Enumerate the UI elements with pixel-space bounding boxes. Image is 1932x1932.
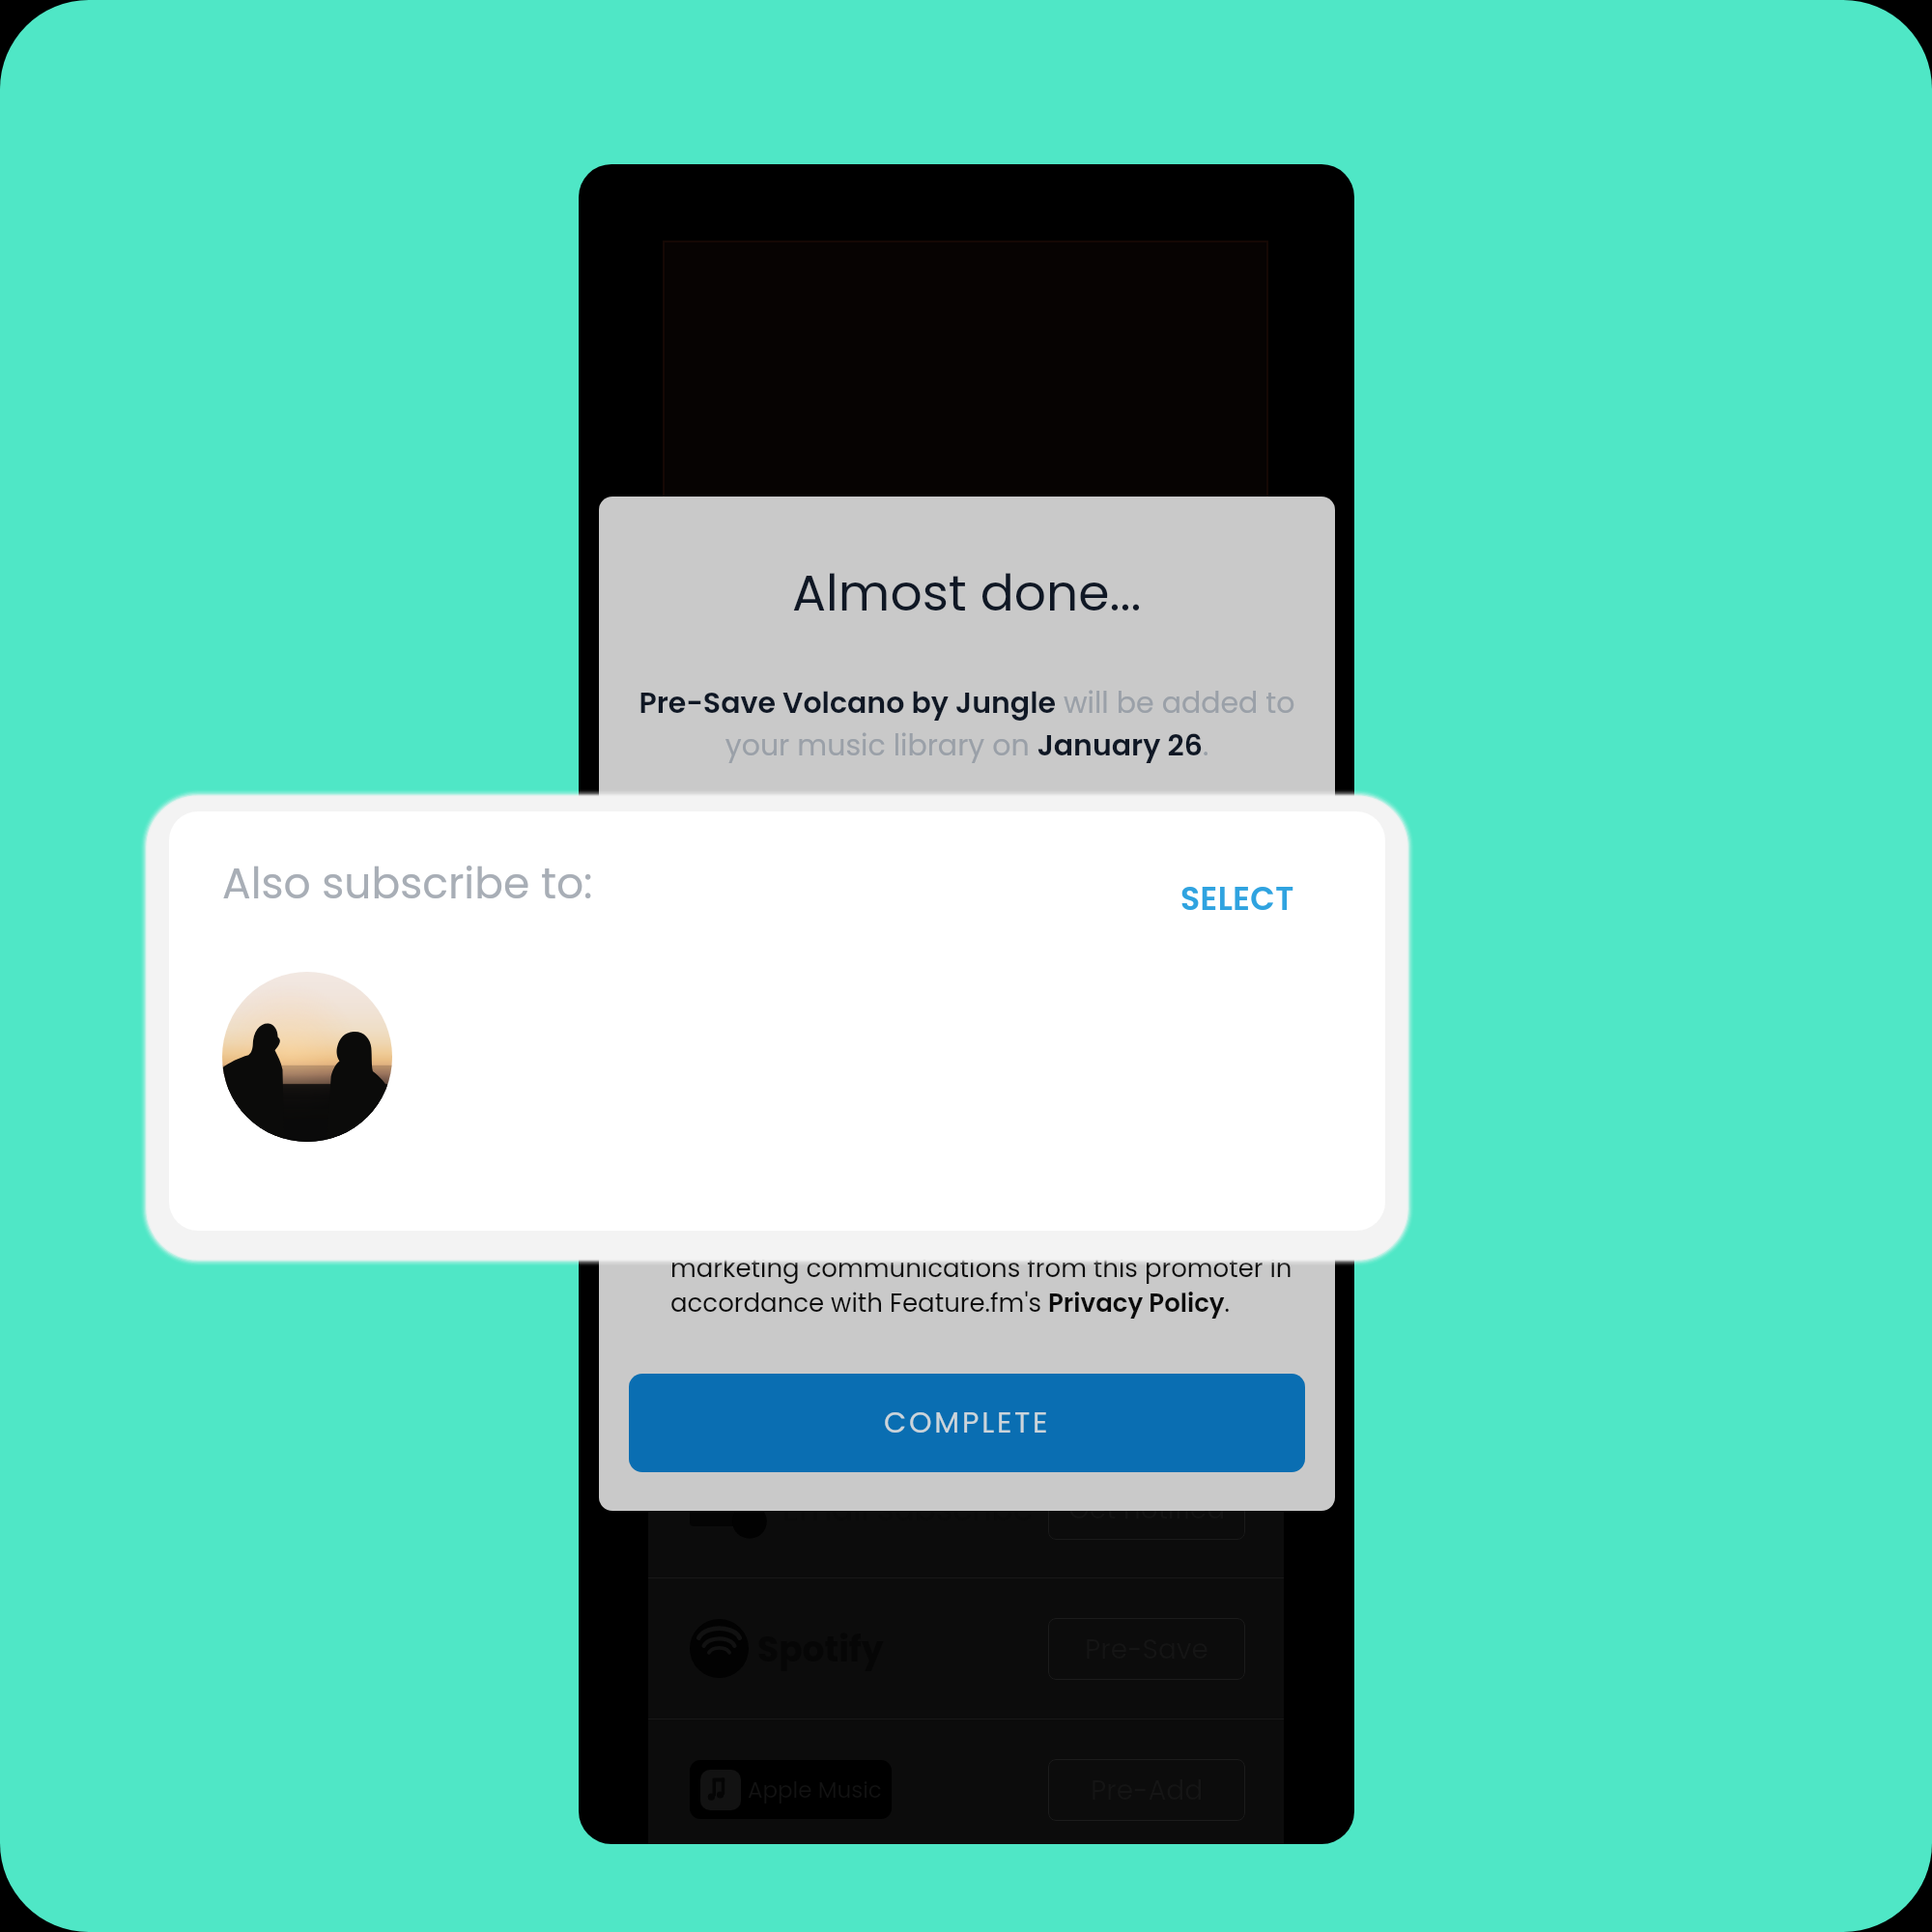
- staticText: Apple Music: [748, 1775, 882, 1805]
- staticText: COMPLETE: [884, 1403, 1051, 1443]
- button[interactable]: Email subscribe: [648, 1323, 1284, 1577]
- staticText: SELECT: [1180, 876, 1294, 921]
- staticText: Pre-Save Volcano by Jungle will be added…: [638, 683, 1296, 765]
- staticText: Email subscribe: [782, 1487, 1034, 1531]
- button[interactable]: SELECT: [1180, 876, 1294, 921]
- button[interactable]: Pre-Save: [1048, 1618, 1245, 1680]
- button[interactable]: Pre-Add: [1048, 1759, 1245, 1821]
- staticText: Almost done...: [792, 557, 1142, 628]
- button[interactable]: COMPLETE: [629, 1374, 1305, 1472]
- staticText: By completing this action you agree to r…: [670, 1216, 1294, 1321]
- staticText: Also subscribe to:: [222, 854, 593, 914]
- button[interactable]: Apple Music: [648, 1719, 1284, 1844]
- staticText: Get notified: [1068, 1491, 1226, 1528]
- button[interactable]: Artist avatar: [222, 972, 392, 1142]
- button[interactable]: Get notified: [1048, 1478, 1245, 1540]
